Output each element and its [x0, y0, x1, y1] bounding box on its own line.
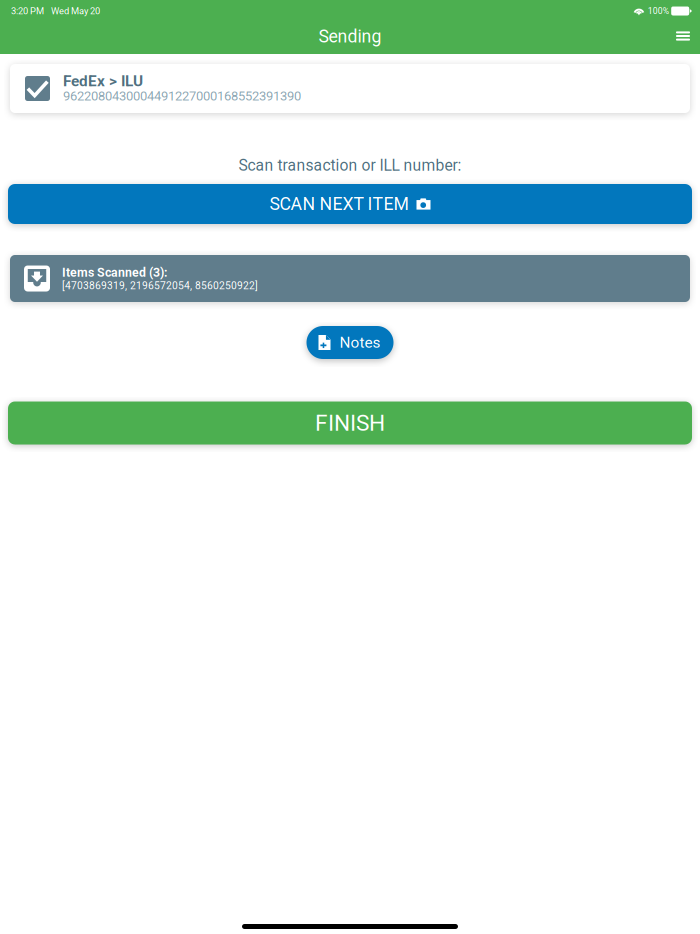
staticText: 100% [648, 6, 669, 16]
button[interactable]: FINISH [8, 401, 692, 444]
staticText: 9622080430004491227000168552391390 [63, 88, 301, 104]
staticText: SCAN NEXT ITEM [269, 194, 408, 214]
staticText: Notes [339, 333, 380, 351]
staticText: Scan transaction or ILL number: [238, 156, 461, 175]
button[interactable]: SCAN NEXT ITEM [8, 184, 692, 224]
staticText: Wed May 20 [51, 5, 100, 16]
staticText: FedEx > ILU [63, 72, 143, 90]
staticText: [4703869319, 2196572054, 8560250922] [62, 280, 258, 292]
staticText: Sending [318, 26, 381, 47]
staticText: Items Scanned (3): [62, 265, 167, 280]
button[interactable]: Menu [660, 20, 700, 52]
staticText: 3:20 PM [11, 5, 44, 16]
staticText: FINISH [315, 410, 385, 436]
button[interactable]: Notes [306, 326, 393, 359]
